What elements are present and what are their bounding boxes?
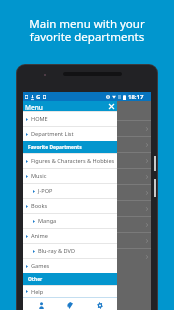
button[interactable]: Favorite Departments	[23, 141, 117, 153]
staticText: 18:17	[128, 93, 144, 101]
button[interactable]: Account	[32, 298, 51, 309]
button[interactable]: Figures & Characters & Hobbies	[23, 154, 117, 168]
staticText: Main menu with your favorite departments	[0, 16, 174, 44]
button[interactable]: Games	[23, 259, 117, 273]
button[interactable]: Books	[23, 199, 117, 213]
button[interactable]: Blu-ray & DVD	[23, 244, 117, 258]
staticText: Other	[28, 276, 43, 283]
staticText: Figures & Characters & Hobbies	[31, 157, 115, 165]
staticText: Help	[31, 288, 44, 296]
staticText: HOME	[31, 115, 48, 123]
button[interactable]: Menu	[23, 101, 117, 111]
button[interactable]: Other	[23, 273, 117, 285]
staticText: Blu-ray & DVD	[38, 247, 75, 255]
button[interactable]: J-POP	[23, 184, 117, 198]
button[interactable]: Anime	[23, 229, 117, 243]
staticText: G	[36, 93, 41, 101]
button[interactable]: Settings	[90, 298, 109, 309]
button[interactable]: Close menu	[106, 101, 117, 111]
button[interactable]: Bookmark	[59, 298, 81, 309]
staticText: Menu	[25, 103, 43, 111]
button[interactable]: Help	[23, 286, 117, 297]
staticText: Favorite Departments	[28, 144, 82, 151]
staticText: Anime	[31, 232, 48, 240]
button[interactable]: Music	[23, 169, 117, 183]
staticText: Manga	[38, 217, 57, 225]
button[interactable]: Manga	[23, 214, 117, 228]
staticText: Books	[31, 202, 48, 210]
staticText: Games	[31, 262, 50, 270]
button[interactable]: HOME	[23, 112, 117, 126]
button[interactable]: Department List	[23, 127, 117, 141]
staticText: Music	[31, 172, 47, 180]
staticText: J-POP	[38, 187, 53, 195]
staticText: Department List	[31, 130, 74, 138]
